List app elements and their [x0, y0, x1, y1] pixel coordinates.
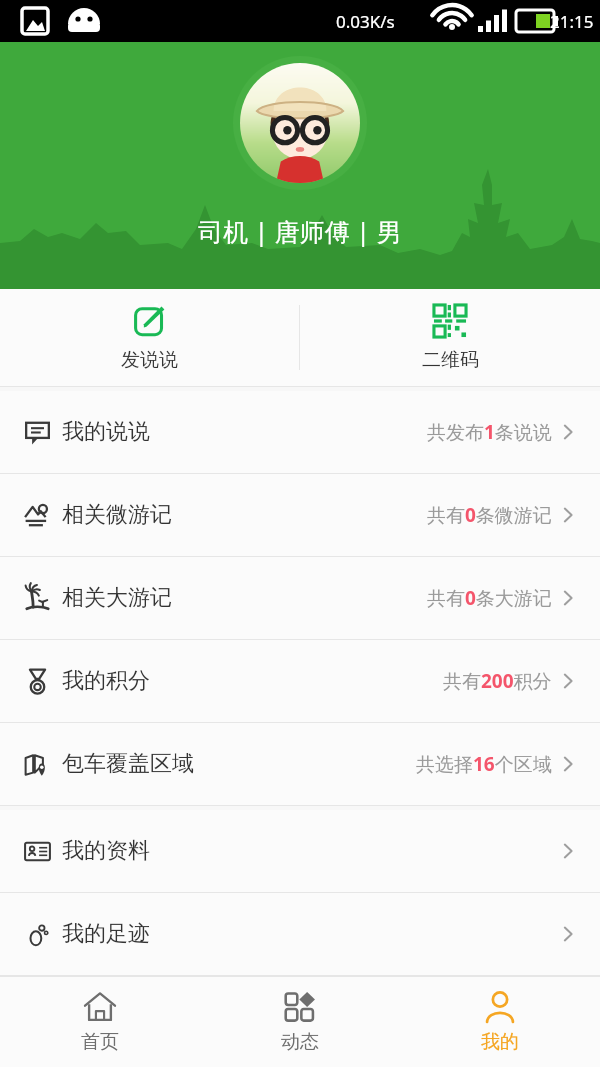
staticText: 动态: [281, 1030, 319, 1054]
button[interactable]: 我的说说: [0, 391, 600, 473]
staticText: 共有0条微游记: [427, 502, 552, 528]
button[interactable]: 二维码: [300, 289, 600, 386]
staticText: 相关微游记: [62, 501, 172, 529]
button[interactable]: 我的资料: [0, 810, 600, 892]
staticText: 共发布1条说说: [427, 419, 552, 445]
staticText: 共有0条大游记: [427, 585, 552, 611]
staticText: 二维码: [422, 348, 479, 372]
button[interactable]: 我的足迹: [0, 893, 600, 975]
button[interactable]: 包车覆盖区域: [0, 723, 600, 805]
staticText: 我的积分: [62, 667, 150, 695]
button[interactable]: 动态: [200, 976, 400, 1067]
button[interactable]: 相关微游记: [0, 474, 600, 556]
staticText: 首页: [81, 1030, 119, 1054]
button[interactable]: 发说说: [0, 289, 299, 386]
staticText: 我的足迹: [62, 920, 150, 948]
button[interactable]: 首页: [0, 976, 200, 1067]
button[interactable]: 我的积分: [0, 640, 600, 722]
staticText: 21:15: [550, 10, 594, 33]
staticText: 司机 | 唐师傅 | 男: [198, 214, 402, 248]
staticText: 发说说: [121, 348, 178, 372]
staticText: 共选择16个区域: [416, 751, 552, 777]
staticText: 我的: [481, 1030, 519, 1054]
staticText: 共有200积分: [443, 668, 552, 694]
staticText: 我的说说: [62, 418, 150, 446]
staticText: 0.03K/s: [336, 10, 395, 33]
staticText: 相关大游记: [62, 584, 172, 612]
staticText: 我的资料: [62, 837, 150, 865]
button[interactable]: 我的: [400, 976, 600, 1067]
button[interactable]: 相关大游记: [0, 557, 600, 639]
staticText: 包车覆盖区域: [62, 750, 194, 778]
